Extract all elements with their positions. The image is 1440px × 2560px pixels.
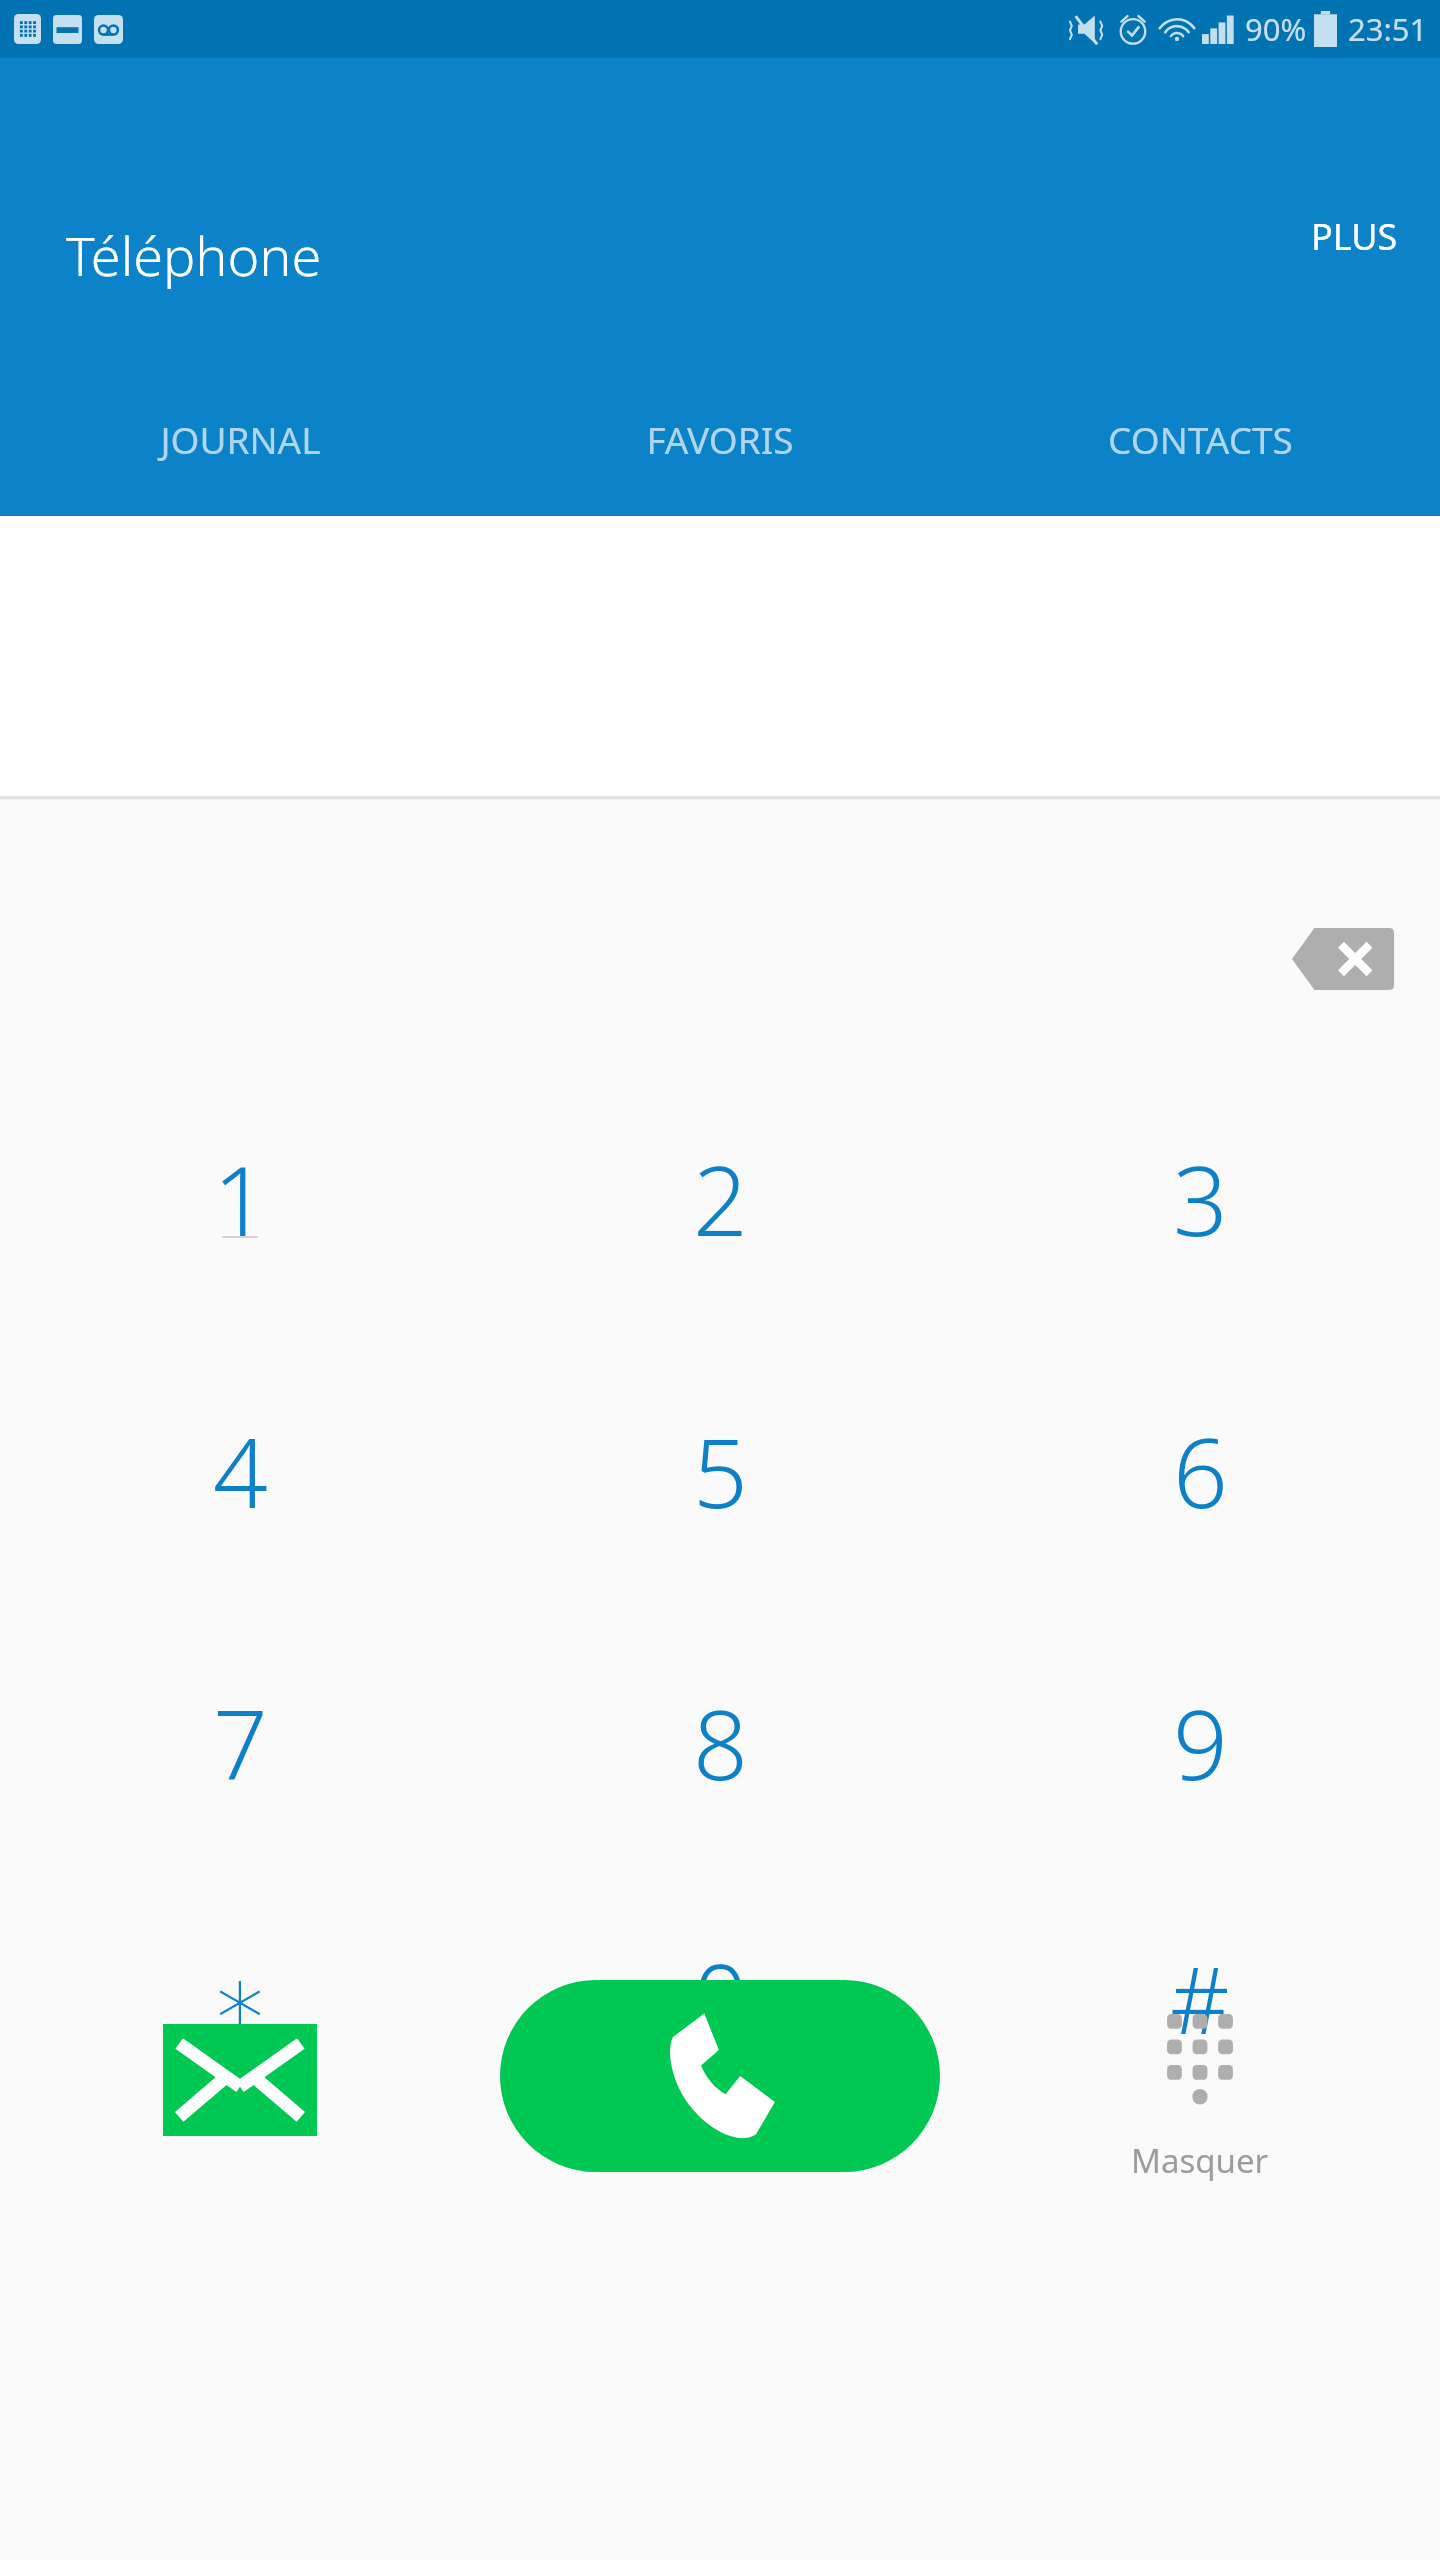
staticText: 7 — [213, 1677, 268, 1781]
button[interactable]: CONTACTS — [960, 414, 1440, 516]
staticText: 9 — [1173, 1677, 1228, 1781]
button[interactable]: 0 — [480, 1931, 960, 2061]
button[interactable]: 8 — [480, 1677, 960, 1781]
staticText: PLUS — [1311, 212, 1398, 261]
staticText: # — [1170, 1936, 1230, 2061]
staticText: 6 — [1173, 1405, 1228, 1509]
staticText: Masquer — [1131, 2138, 1269, 2183]
staticText: 3 — [1173, 1133, 1228, 1237]
staticText: 1 — [213, 1133, 268, 1237]
staticText: 8 — [693, 1677, 748, 1781]
button[interactable]: Supprimer — [1246, 888, 1440, 1030]
button[interactable]: FAVORIS — [480, 414, 960, 516]
button[interactable]: # — [960, 1931, 1440, 2061]
button[interactable]: JOURNAL — [0, 414, 480, 516]
staticText: JOURNAL — [160, 414, 321, 464]
button[interactable]: Masquer — [960, 1980, 1440, 2183]
button[interactable]: 3 — [960, 1133, 1440, 1237]
staticText: CONTACTS — [1108, 414, 1293, 464]
button[interactable]: 6 — [960, 1405, 1440, 1509]
button[interactable]: 4 — [0, 1405, 480, 1509]
button[interactable]: Appeler — [500, 1980, 940, 2172]
button[interactable]: ∗ — [0, 1931, 480, 2061]
staticText: 5 — [693, 1405, 748, 1509]
staticText: Téléphone — [66, 218, 322, 292]
staticText: 23:51 — [1348, 8, 1428, 50]
button[interactable]: 7 — [0, 1677, 480, 1781]
staticText: ∗ — [210, 1944, 271, 2056]
button[interactable]: Envoyer un message — [0, 1980, 480, 2092]
staticText: 90% — [1245, 8, 1307, 50]
staticText: 2 — [693, 1133, 748, 1237]
button[interactable]: PLUS — [1269, 178, 1440, 295]
staticText: 4 — [213, 1405, 268, 1509]
button[interactable]: 1 — [0, 1133, 480, 1237]
button[interactable]: 9 — [960, 1677, 1440, 1781]
button[interactable]: 5 — [480, 1405, 960, 1509]
staticText: FAVORIS — [646, 414, 794, 464]
staticText: 0 — [693, 1931, 748, 2061]
button[interactable]: 2 — [480, 1133, 960, 1237]
